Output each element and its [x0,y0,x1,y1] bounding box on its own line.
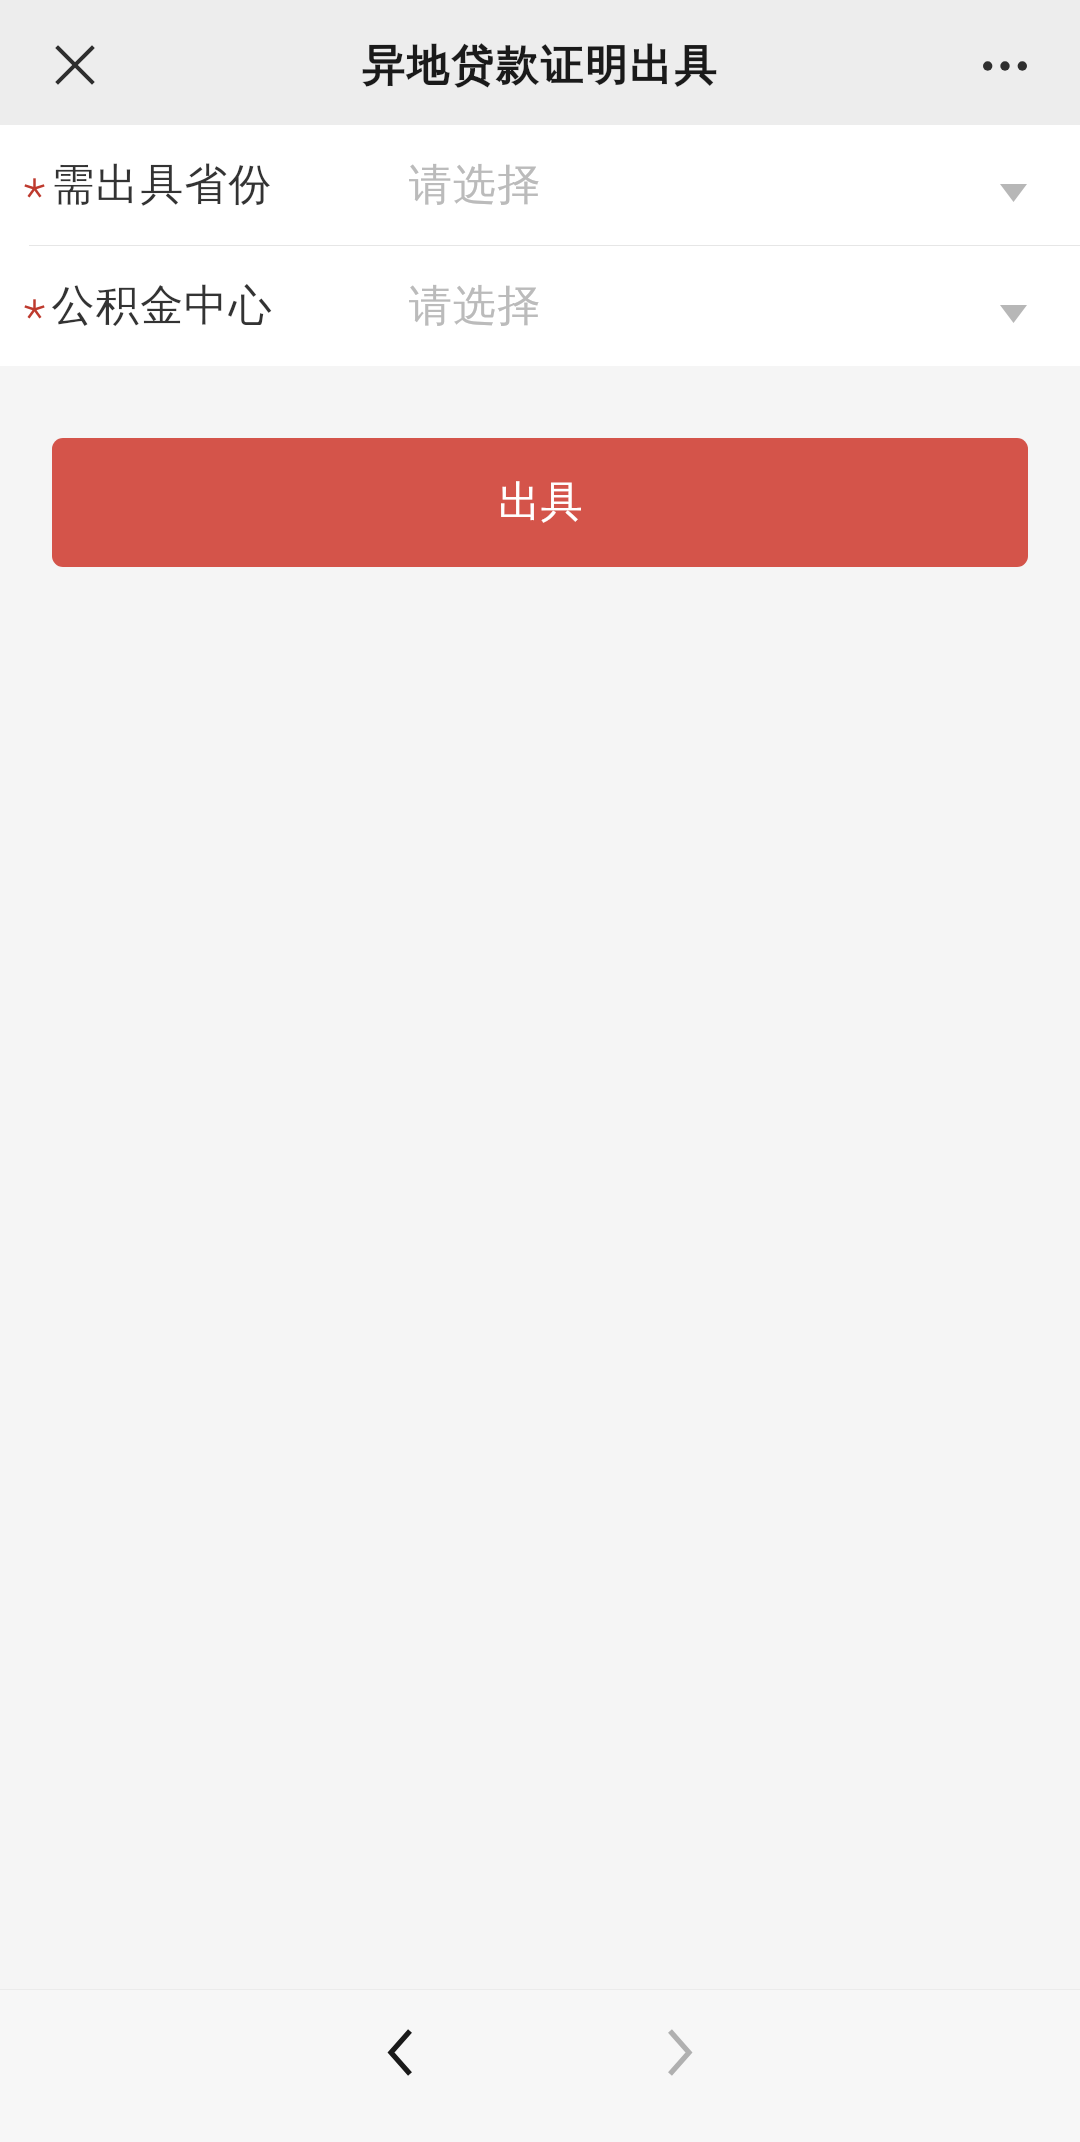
button[interactable]: Back [360,2012,440,2092]
staticText: 请选择 [409,279,542,333]
button[interactable]: Close [32,22,117,107]
button[interactable]: Forward [639,2012,719,2092]
staticText: 需出具省份 [51,158,272,212]
button[interactable]: 需出具省份 [0,125,1080,245]
staticText: 请选择 [409,158,542,212]
staticText: 公积金中心 [51,279,272,333]
staticText: 出具 [498,476,583,529]
button[interactable]: 出具 [52,438,1028,567]
staticText: 异地贷款证明出具 [362,40,719,93]
button[interactable]: 公积金中心 [0,246,1080,366]
button[interactable]: More options [961,22,1049,110]
